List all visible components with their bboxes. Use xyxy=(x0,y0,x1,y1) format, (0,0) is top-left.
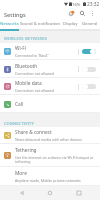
button[interactable]: Search xyxy=(78,9,87,18)
button[interactable]: Bluetooth xyxy=(0,60,100,78)
staticText: 16% xyxy=(72,2,81,8)
staticText: Tethering xyxy=(15,147,37,154)
staticText: Connection not allowed xyxy=(15,71,54,76)
staticText: Sound & notification xyxy=(20,21,61,27)
staticText: Airplane mode, Mobile private networks xyxy=(15,178,81,183)
button[interactable]: More options xyxy=(88,9,97,18)
staticText: Use the internet on a device via Wi-Fi h… xyxy=(15,155,96,164)
button[interactable]: Tethering xyxy=(0,144,100,167)
staticText: CONNECTIVITY xyxy=(4,121,34,126)
button[interactable]: Mobile data xyxy=(0,78,100,95)
button[interactable]: Toggle Mobile data xyxy=(82,84,96,89)
staticText: Mobile data xyxy=(15,80,42,87)
button[interactable]: Back xyxy=(15,186,29,200)
button[interactable]: Wi-Fi xyxy=(0,43,100,60)
button[interactable]: Notifications xyxy=(66,9,75,18)
button[interactable]: More xyxy=(0,167,100,186)
staticText: Wi-Fi xyxy=(15,45,26,52)
button[interactable]: General xyxy=(79,19,100,29)
staticText: WIRELESS NETWORKS xyxy=(4,36,48,41)
staticText: Networks xyxy=(0,21,19,27)
staticText: Share data and media with other devices xyxy=(15,137,82,142)
button[interactable]: Recent apps xyxy=(72,186,86,200)
staticText: Bluetooth xyxy=(15,63,38,70)
staticText: Settings xyxy=(4,11,26,19)
staticText: Call xyxy=(15,101,24,108)
staticText: Connection not allowed xyxy=(15,88,54,93)
button[interactable]: Toggle Wi-Fi xyxy=(82,49,96,54)
staticText: 23:32 xyxy=(87,1,100,8)
button[interactable]: Networks xyxy=(0,19,19,29)
staticText: General xyxy=(82,21,98,27)
button[interactable]: Sound & notification xyxy=(19,19,62,29)
staticText: More xyxy=(15,170,27,177)
staticText: Display xyxy=(63,21,78,27)
staticText: Share & connect xyxy=(15,129,52,136)
button[interactable]: Display xyxy=(62,19,79,29)
button[interactable]: Call xyxy=(0,95,100,113)
button[interactable]: Toggle Bluetooth xyxy=(82,67,96,72)
button[interactable]: Home xyxy=(43,186,57,200)
button[interactable]: Share & connect xyxy=(0,127,100,144)
staticText: Connected to "Bac4" xyxy=(15,53,49,58)
